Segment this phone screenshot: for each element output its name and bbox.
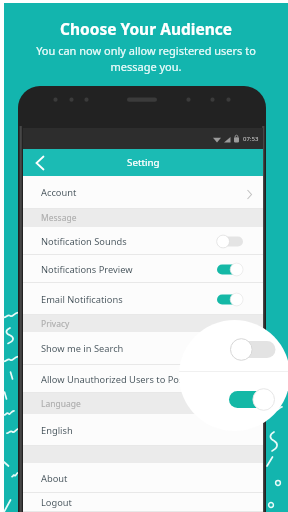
staticText: Privacy bbox=[41, 318, 70, 330]
button[interactable]: English bbox=[23, 414, 263, 446]
button[interactable]: About bbox=[23, 463, 263, 493]
staticText: Show me in Search bbox=[41, 342, 124, 355]
button[interactable]: Show me in Search switch bbox=[217, 342, 244, 355]
other: Open bbox=[245, 188, 254, 197]
button[interactable]: Show me in Search bbox=[23, 332, 263, 365]
staticText: Setting bbox=[127, 156, 160, 169]
staticText: About bbox=[41, 472, 68, 485]
staticText: You can now only allow registered users … bbox=[2, 43, 288, 74]
staticText: Notifications Preview bbox=[41, 263, 133, 276]
staticText: Message bbox=[41, 212, 77, 224]
staticText: 07:53 bbox=[243, 135, 259, 143]
button[interactable]: Account bbox=[23, 176, 263, 209]
staticText: Email Notifications bbox=[41, 293, 123, 306]
staticText: Choose Your Audience bbox=[2, 18, 288, 39]
staticText: English bbox=[41, 424, 73, 437]
button[interactable]: Toggle on bbox=[229, 388, 275, 411]
button[interactable]: Notification Sounds bbox=[23, 227, 263, 255]
button[interactable]: Email Notifications bbox=[23, 283, 263, 315]
button[interactable]: Notifications Preview switch bbox=[217, 263, 244, 276]
button[interactable]: Allow Unauthorized Users to Post bbox=[23, 365, 263, 393]
staticText: Language bbox=[41, 398, 81, 410]
button[interactable]: Toggle off bbox=[230, 338, 276, 361]
staticText: Allow Unauthorized Users to Post bbox=[41, 373, 187, 386]
staticText: Notification Sounds bbox=[41, 235, 127, 248]
staticText: Account bbox=[41, 186, 77, 199]
button[interactable]: Notification Sounds switch bbox=[217, 235, 244, 248]
button[interactable]: Back bbox=[31, 153, 51, 173]
button[interactable]: Email Notifications switch bbox=[217, 293, 244, 306]
button[interactable]: Notifications Preview bbox=[23, 255, 263, 283]
staticText: Logout bbox=[41, 496, 72, 509]
button[interactable]: Logout bbox=[23, 493, 263, 512]
